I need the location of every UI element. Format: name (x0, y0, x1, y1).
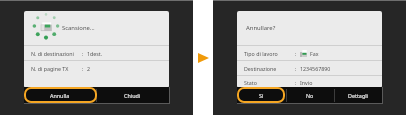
staticText: Tipo di lavoro (244, 50, 278, 57)
staticText: : (82, 65, 84, 72)
staticText: Annulla (50, 92, 70, 99)
staticText: 1234567890 (300, 65, 331, 72)
button[interactable]: Annulla (24, 87, 96, 103)
staticText: No (306, 92, 314, 99)
button[interactable]: No (286, 87, 334, 103)
staticText: : (295, 79, 297, 86)
staticText: : (82, 50, 84, 57)
staticText: 1dest. (87, 50, 103, 57)
staticText: Destinazione (244, 65, 277, 72)
staticText: Chiudi (124, 92, 141, 99)
staticText: Fax (310, 50, 319, 57)
staticText: N. di pagine TX (31, 65, 69, 72)
staticText: Sì (259, 92, 264, 99)
button[interactable]: Dettagli (334, 87, 382, 103)
staticText: Scansione... (62, 24, 95, 32)
staticText: N. di destinazioni (31, 50, 74, 57)
staticText: : (295, 65, 297, 72)
staticText: Dettagli (348, 92, 368, 99)
staticText: : (295, 50, 297, 57)
button[interactable]: Chiudi (96, 87, 169, 103)
staticText: Invio (300, 79, 313, 86)
staticText: Annullare? (246, 24, 276, 32)
staticText: Stato (244, 79, 257, 86)
button[interactable]: Sì (237, 87, 286, 103)
staticText: 2 (87, 65, 91, 72)
